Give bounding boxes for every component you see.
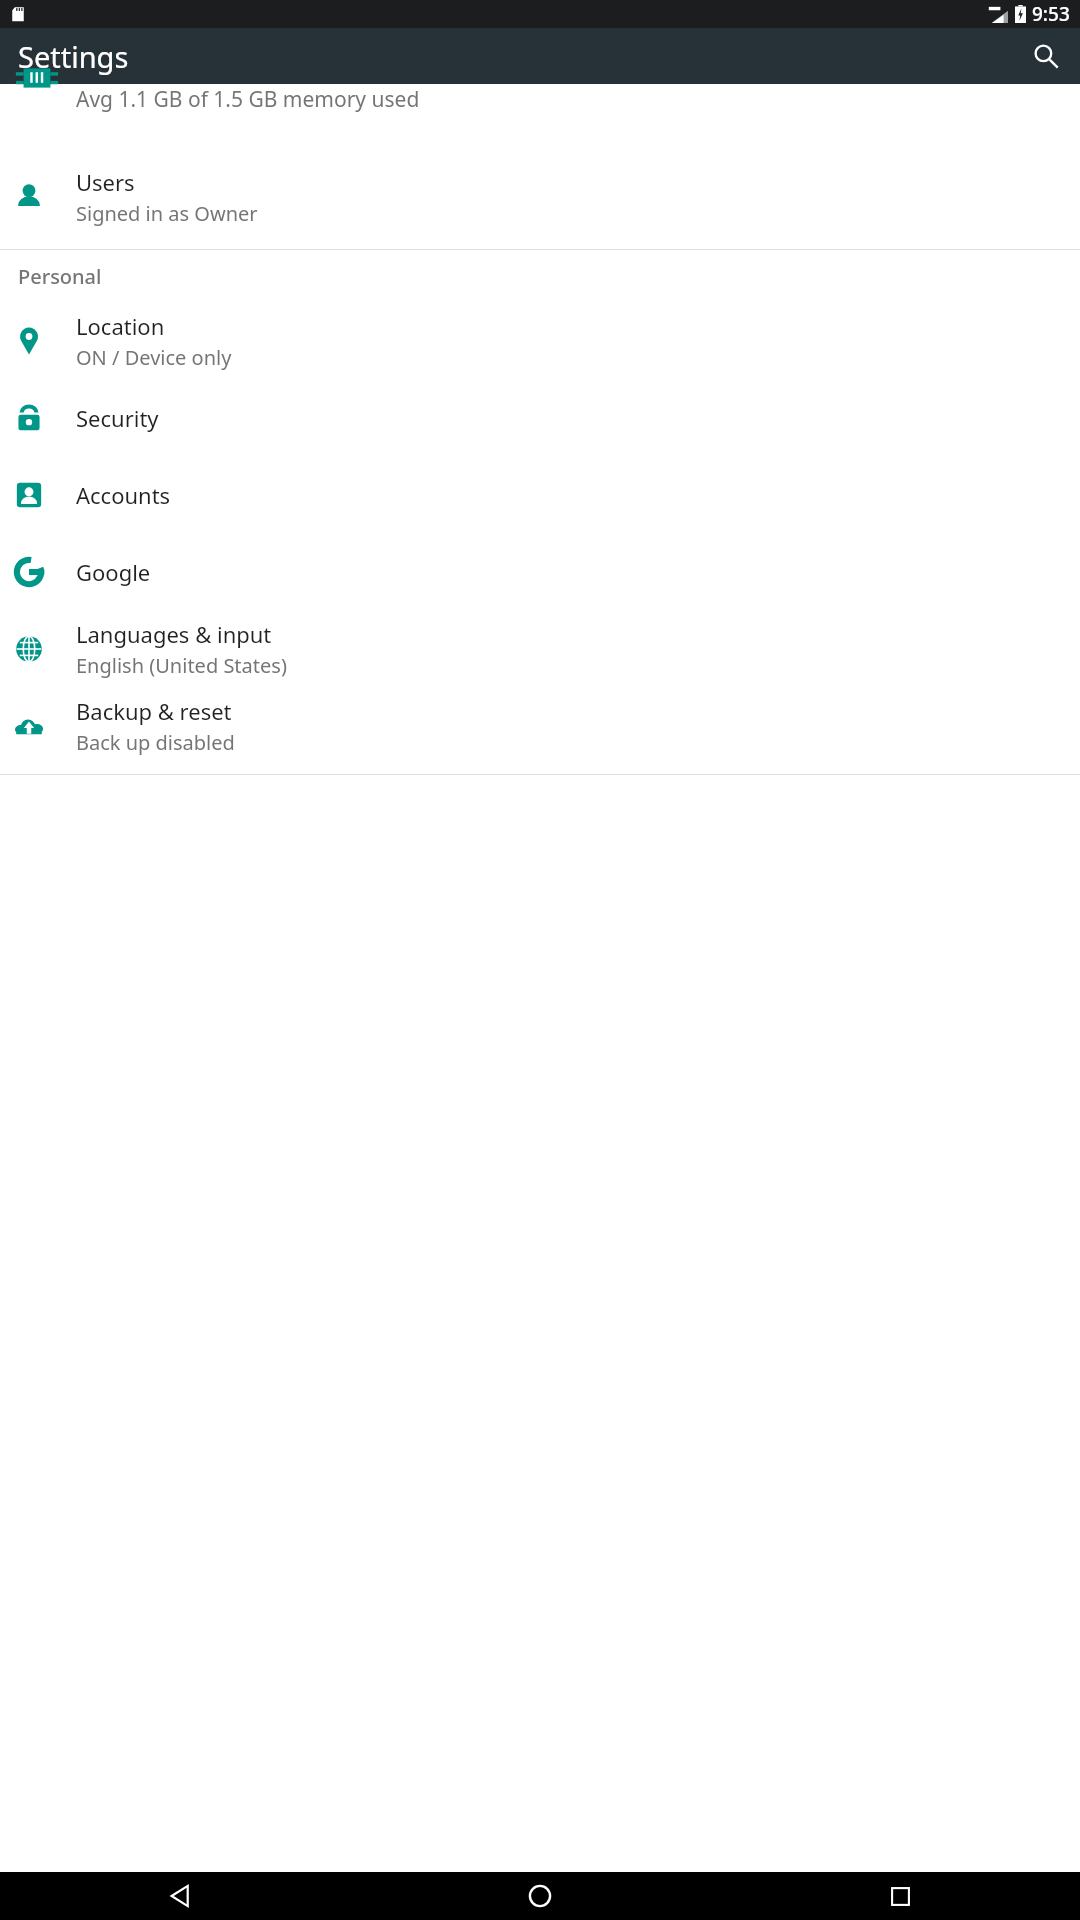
staticText: Personal [18, 263, 102, 290]
button[interactable]: Accounts [0, 456, 1080, 533]
staticText: Backup & reset [76, 696, 232, 726]
button[interactable]: Recents [720, 1872, 1080, 1920]
staticText: Languages & input [76, 619, 272, 649]
staticText: Location [76, 311, 165, 341]
button[interactable]: Home [360, 1872, 720, 1920]
button[interactable]: Users [0, 158, 1080, 235]
staticText: Avg 1.1 GB of 1.5 GB memory used [76, 85, 420, 114]
button[interactable]: Security [0, 379, 1080, 456]
staticText: Signed in as Owner [76, 200, 258, 227]
staticText: 9:53 [1032, 1, 1070, 27]
button[interactable]: Languages & input [0, 610, 1080, 687]
button[interactable]: Avg 1.1 GB of 1.5 GB memory used [0, 84, 1080, 158]
staticText: English (United States) [76, 652, 287, 679]
staticText: ON / Device only [76, 344, 232, 371]
staticText: Google [76, 557, 151, 587]
staticText: Settings [18, 37, 129, 76]
staticText: Users [76, 167, 135, 197]
staticText: Security [76, 403, 159, 433]
button[interactable]: Google [0, 533, 1080, 610]
button[interactable]: Search [1022, 32, 1070, 80]
staticText: Back up disabled [76, 729, 235, 756]
button[interactable]: Backup & reset [0, 687, 1080, 764]
button[interactable]: Back [0, 1872, 360, 1920]
staticText: Accounts [76, 480, 171, 510]
button[interactable]: Location [0, 302, 1080, 379]
